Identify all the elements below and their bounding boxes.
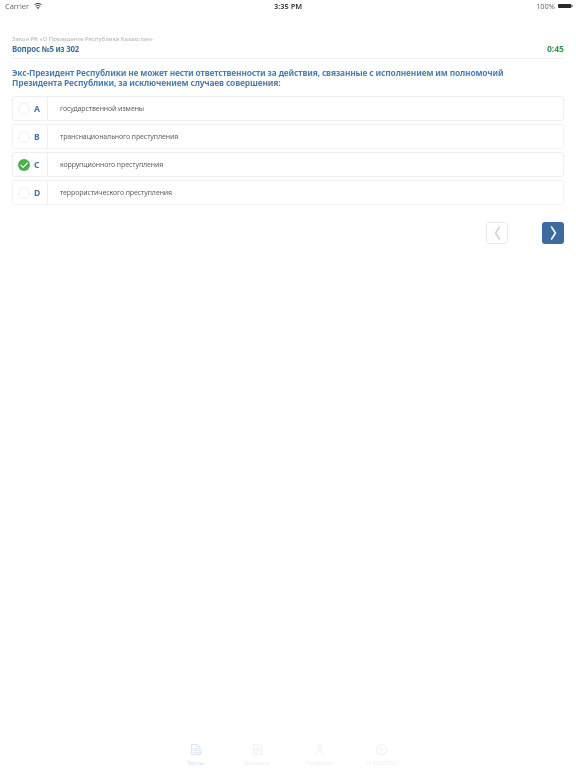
staticText: Экс-Президент Республики не может нести …: [12, 67, 548, 88]
button[interactable]: Previous question: [486, 222, 508, 244]
staticText: B: [34, 131, 40, 143]
staticText: государственной измены: [60, 104, 145, 114]
button[interactable]: C: [12, 152, 564, 177]
staticText: 3:35 PM: [274, 1, 303, 11]
staticText: Carrier: [5, 1, 30, 11]
staticText: C: [34, 159, 40, 171]
staticText: D: [34, 187, 41, 199]
button[interactable]: Тесты: [164, 742, 226, 768]
staticText: транснационального преступления: [60, 132, 179, 142]
staticText: террористического преступления: [60, 188, 173, 198]
button[interactable]: Next question: [542, 222, 564, 244]
staticText: Закон РК «О Президенте Республики Казахс…: [12, 35, 153, 43]
staticText: О KAZTEST: [366, 759, 397, 767]
staticText: Вопрос №5 из 302: [12, 44, 80, 55]
staticText: 0:45: [547, 43, 564, 55]
button[interactable]: D: [12, 180, 564, 205]
staticText: 100%: [536, 1, 555, 11]
staticText: Правила: [244, 759, 270, 767]
button[interactable]: A: [12, 96, 564, 121]
button[interactable]: B: [12, 124, 564, 149]
staticText: A: [34, 103, 40, 115]
staticText: Профиль: [306, 759, 333, 767]
staticText: коррупционного преступления: [60, 160, 164, 170]
staticText: Тесты: [187, 759, 204, 767]
